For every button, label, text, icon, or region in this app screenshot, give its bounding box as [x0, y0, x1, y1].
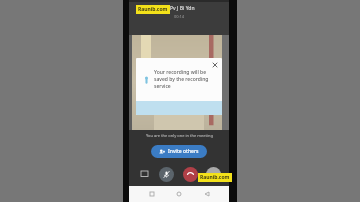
button[interactable]: Close	[211, 61, 219, 69]
button[interactable]: Invite others	[151, 145, 207, 158]
staticText: Raunib.com	[200, 174, 230, 181]
button[interactable]: Turn off camera	[206, 167, 221, 182]
button[interactable]: End call	[183, 167, 198, 182]
button[interactable]: Chat	[137, 167, 151, 181]
staticText: Raunib.com	[138, 6, 168, 13]
button[interactable]: Back	[202, 189, 212, 199]
staticText: 00:14	[129, 14, 229, 19]
staticText: You are the only one in the meeting	[146, 133, 213, 138]
staticText: Invite others	[168, 148, 199, 155]
button[interactable]: Recents	[147, 189, 157, 199]
button[interactable]: Unmute microphone	[159, 167, 174, 182]
button[interactable]: Home	[174, 189, 184, 199]
staticText: Pv J Bi Ydn	[170, 5, 195, 12]
staticText: Your recording will be saved by the reco…	[154, 69, 215, 90]
